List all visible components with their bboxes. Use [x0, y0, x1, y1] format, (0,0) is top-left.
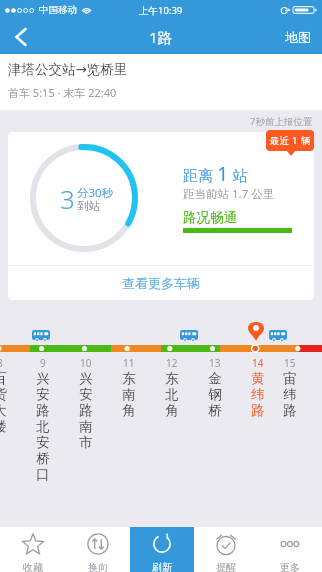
staticText: 市	[79, 434, 93, 450]
staticText: 1	[217, 160, 229, 187]
staticText: 津塔公交站→览桥里	[8, 61, 128, 78]
staticText: 提醒	[216, 561, 236, 572]
button[interactable]: 提醒	[194, 527, 258, 572]
staticText: 1路	[149, 27, 173, 47]
button[interactable]: 10	[64, 356, 107, 450]
staticText: 东	[165, 370, 179, 386]
staticText: 东	[122, 370, 136, 386]
staticText: 首车 5:15 · 末车 22:40	[8, 85, 117, 100]
staticText: 地图	[285, 29, 311, 45]
button[interactable]: 更多	[258, 527, 322, 572]
staticText: 上午10:39	[139, 4, 183, 17]
staticText: 到站	[77, 199, 100, 213]
staticText: 楼	[0, 418, 7, 434]
staticText: 10	[80, 356, 92, 369]
button[interactable]: 12	[150, 356, 193, 418]
staticText: 北	[36, 418, 50, 434]
staticText: 站	[233, 167, 248, 186]
staticText: 7秒前上报位置	[250, 115, 313, 128]
button[interactable]: Back	[0, 20, 40, 54]
staticText: 北	[165, 386, 179, 402]
button[interactable]: 13	[193, 356, 236, 418]
button[interactable]: 15	[279, 356, 300, 418]
staticText: 距当前站 1.7 公里	[183, 186, 275, 202]
staticText: 安	[36, 434, 50, 450]
staticText: 口	[36, 466, 50, 482]
staticText: 更多	[280, 561, 300, 572]
other: Bus	[269, 330, 287, 340]
staticText: 桥	[208, 402, 222, 418]
other: Bus	[180, 330, 198, 340]
button[interactable]: 刷新	[130, 527, 194, 572]
staticText: 兴	[79, 370, 93, 386]
staticText: 纬	[283, 386, 297, 402]
other: Bus	[32, 330, 50, 340]
staticText: 南	[79, 418, 93, 434]
other: Current position	[248, 320, 264, 341]
staticText: 安	[36, 386, 50, 402]
staticText: 兴	[36, 370, 50, 386]
staticText: 查看更多车辆	[122, 275, 200, 291]
button[interactable]: 8	[0, 356, 21, 434]
staticText: 角	[165, 402, 179, 418]
staticText: 3	[60, 181, 75, 216]
staticText: 收藏	[23, 561, 43, 572]
staticText: 最近	[270, 135, 289, 147]
staticText: 南	[122, 386, 136, 402]
staticText: 辆	[301, 135, 311, 147]
staticText: 12	[166, 356, 178, 369]
staticText: 金	[208, 370, 222, 386]
staticText: 路况畅通	[183, 209, 237, 226]
button[interactable]: 地图	[274, 20, 322, 54]
button[interactable]: 最近	[266, 130, 314, 151]
staticText: 角	[122, 402, 136, 418]
button[interactable]: 收藏	[0, 527, 65, 572]
staticText: 14	[252, 356, 264, 369]
staticText: 桥	[36, 450, 50, 466]
staticText: 刷新	[152, 561, 172, 572]
button[interactable]: 查看更多车辆	[8, 266, 314, 300]
staticText: 路	[283, 402, 297, 418]
staticText: 大	[0, 402, 7, 418]
staticText: 钢	[208, 386, 222, 402]
staticText: 中国移动	[39, 4, 77, 16]
staticText: 距离	[183, 167, 213, 186]
button[interactable]: 11	[107, 356, 150, 418]
button[interactable]: 14	[236, 356, 279, 418]
staticText: 9	[40, 356, 46, 369]
staticText: 宙	[283, 370, 297, 386]
staticText: 路	[251, 402, 265, 418]
staticText: 路	[36, 402, 50, 418]
button[interactable]: 换向	[65, 527, 130, 572]
staticText: 13	[209, 356, 221, 369]
staticText: 货	[0, 386, 7, 402]
staticText: 8	[0, 356, 3, 369]
staticText: 15	[284, 356, 296, 369]
staticText: 换向	[88, 561, 108, 572]
button[interactable]: 9	[21, 356, 64, 482]
staticText: 路	[79, 402, 93, 418]
staticText: 11	[123, 356, 135, 369]
staticText: 百	[0, 370, 7, 386]
staticText: 黄	[251, 370, 265, 386]
staticText: 纬	[251, 386, 265, 402]
staticText: 安	[79, 386, 93, 402]
staticText: 1	[292, 134, 298, 147]
staticText: 分30秒	[77, 185, 114, 199]
